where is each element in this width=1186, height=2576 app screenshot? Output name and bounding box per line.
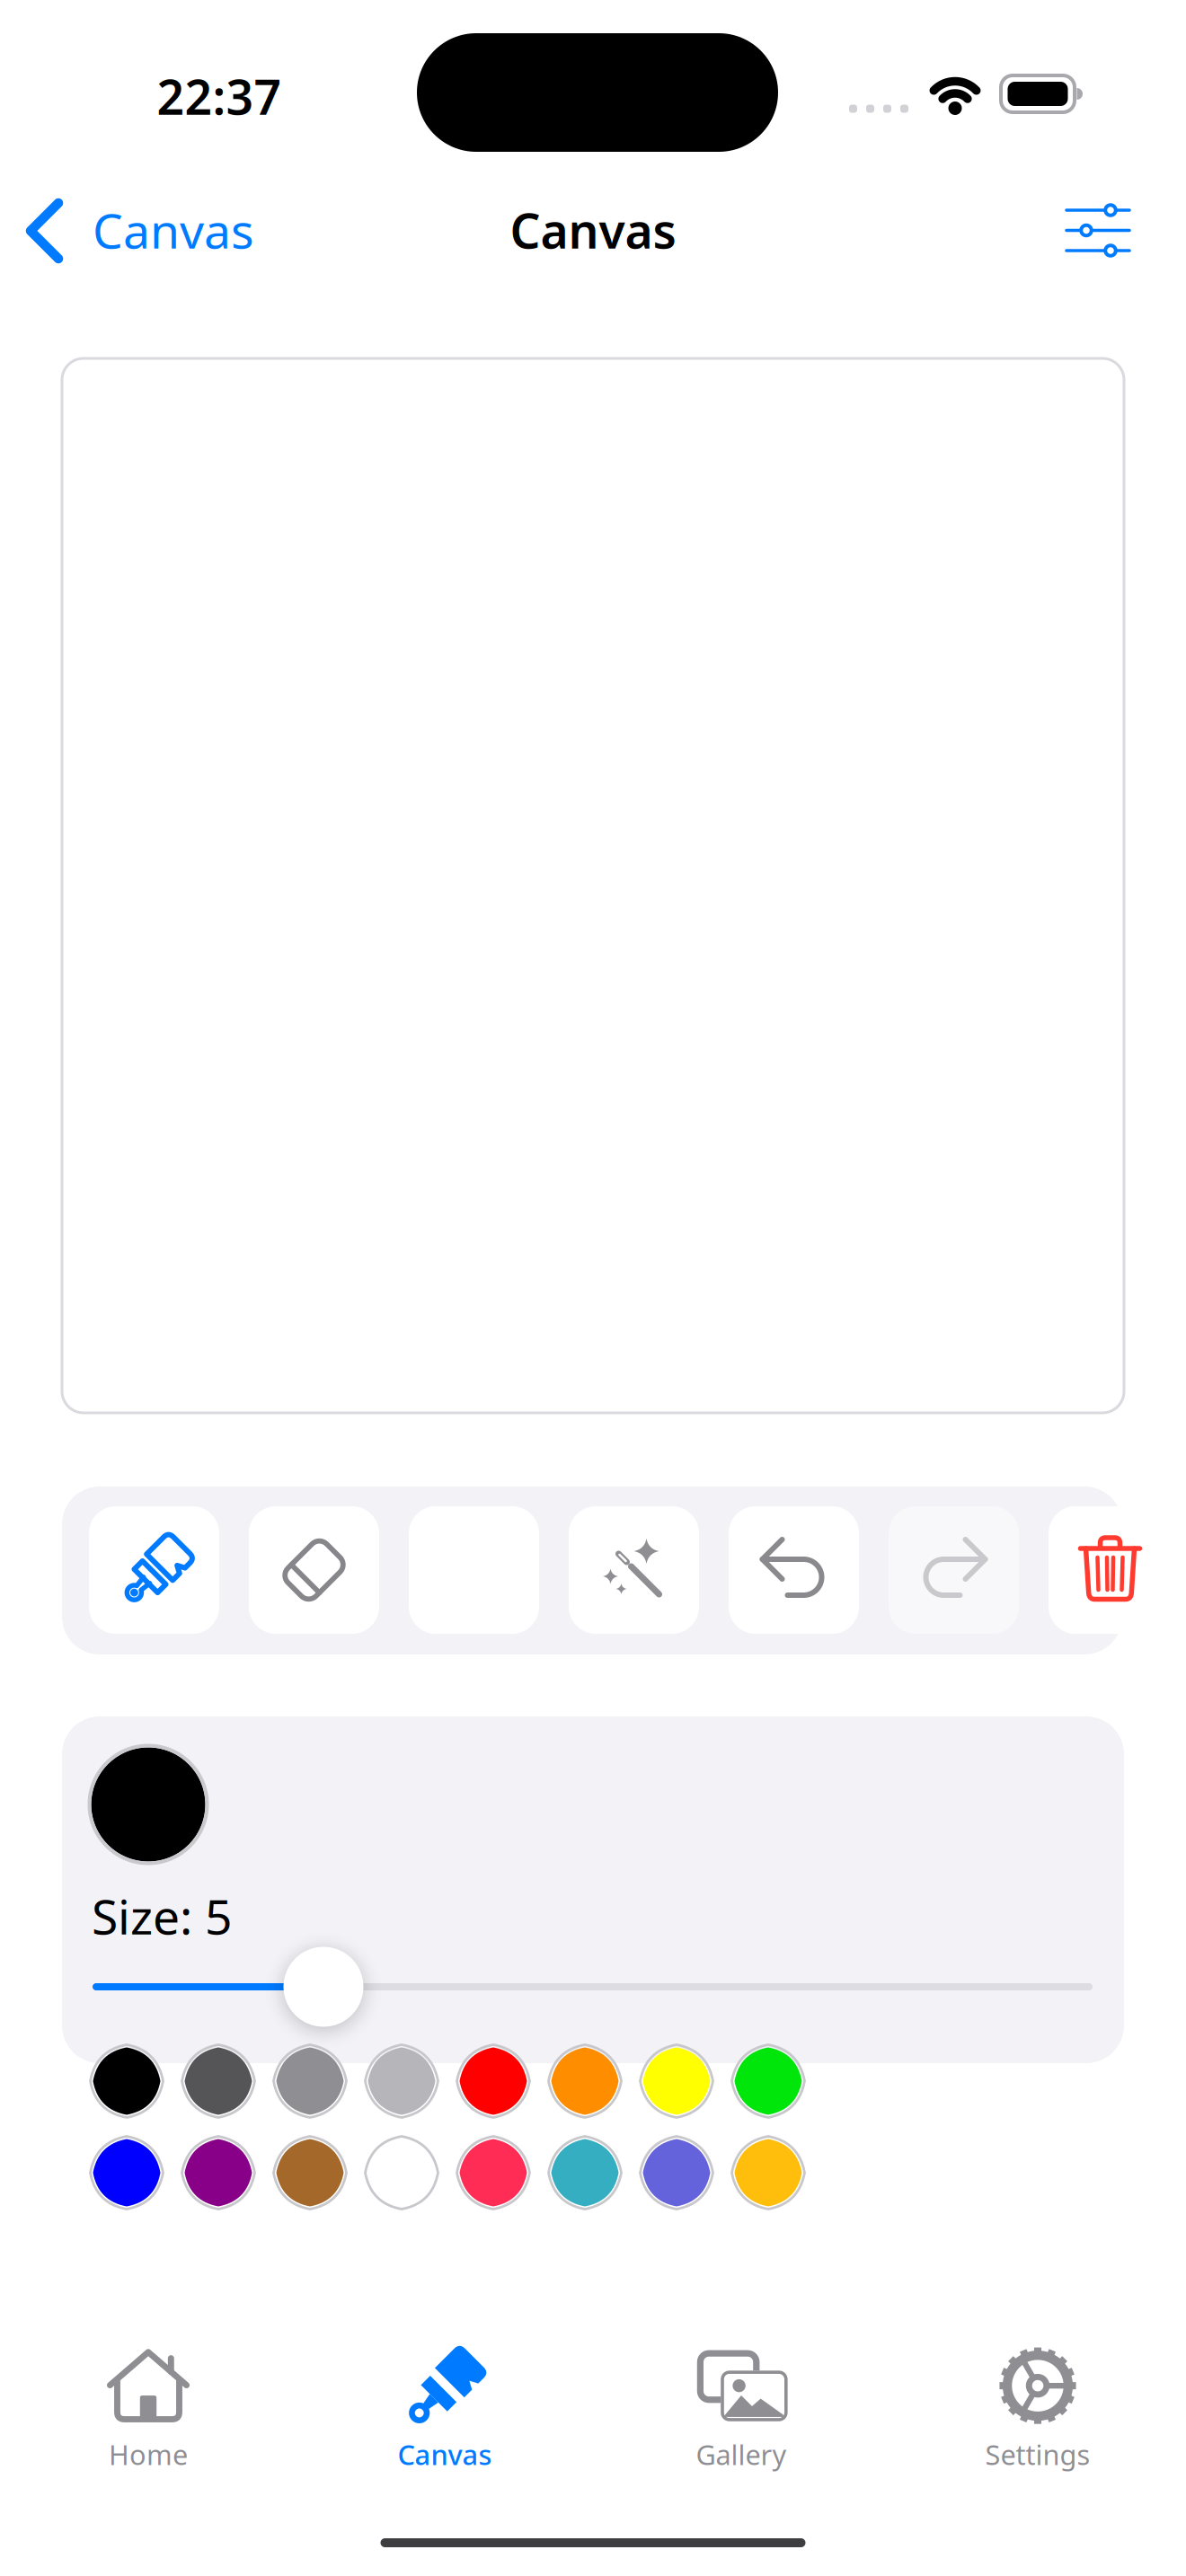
button[interactable]: Home <box>13 2336 283 2480</box>
button[interactable]: Gallery <box>606 2336 876 2480</box>
button[interactable]: White <box>365 2136 438 2209</box>
button[interactable]: Green <box>732 2045 805 2117</box>
staticText: 22:37 <box>157 64 282 128</box>
button[interactable]: Yellow <box>640 2045 713 2117</box>
button[interactable]: Settings <box>903 2336 1173 2480</box>
button[interactable]: Clear canvas <box>1049 1506 1179 1634</box>
button[interactable]: Gray <box>274 2045 346 2117</box>
button[interactable]: Red <box>457 2045 530 2117</box>
button[interactable]: Pink <box>457 2136 530 2209</box>
button[interactable]: Gold <box>732 2136 805 2209</box>
button[interactable]: Light gray <box>365 2045 438 2117</box>
button[interactable]: Brush size slider <box>283 1947 363 2027</box>
button[interactable]: Dark gray <box>182 2045 255 2117</box>
button[interactable]: Undo <box>729 1506 859 1634</box>
staticText: Canvas <box>93 198 254 262</box>
staticText: Gallery <box>696 2436 787 2473</box>
button[interactable]: Canvas <box>310 2336 580 2480</box>
button[interactable]: Indigo <box>640 2136 713 2209</box>
button[interactable]: Brown <box>274 2136 346 2209</box>
staticText: Home <box>109 2436 188 2473</box>
staticText: Settings <box>985 2436 1090 2473</box>
button[interactable]: Purple <box>182 2136 255 2209</box>
button[interactable]: Teal <box>549 2136 621 2209</box>
staticText: Size: 5 <box>92 1884 233 1948</box>
staticText: Canvas <box>510 198 676 262</box>
button[interactable]: Eraser <box>249 1506 379 1634</box>
button[interactable]: Brush <box>89 1506 219 1634</box>
button[interactable]: Magic wand <box>569 1506 699 1634</box>
button[interactable]: Black <box>90 2045 163 2117</box>
staticText: Canvas <box>398 2436 492 2473</box>
button[interactable]: Canvas settings <box>1067 202 1129 259</box>
button[interactable]: Orange <box>549 2045 621 2117</box>
button[interactable]: Blue <box>90 2136 163 2209</box>
button[interactable]: Redo <box>889 1506 1019 1634</box>
button[interactable]: Back <box>27 202 261 260</box>
